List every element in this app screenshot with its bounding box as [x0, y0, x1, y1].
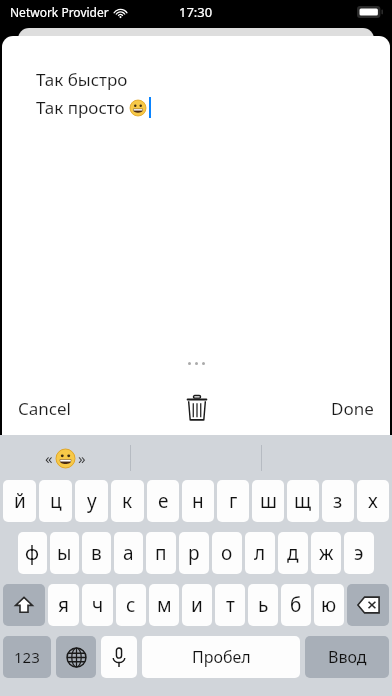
button[interactable]: л: [245, 532, 275, 574]
staticText: с: [126, 592, 136, 618]
staticText: к: [122, 488, 133, 514]
button[interactable]: Done: [261, 391, 390, 425]
button[interactable]: к: [111, 480, 144, 522]
staticText: ч: [92, 592, 104, 618]
button[interactable]: и: [182, 584, 212, 626]
staticText: р: [188, 540, 200, 566]
staticText: Cancel: [18, 397, 71, 420]
button[interactable]: й: [3, 480, 36, 522]
staticText: ь: [258, 592, 269, 618]
button[interactable]: ж: [311, 532, 341, 574]
staticText: «: [45, 448, 53, 468]
staticText: г: [229, 488, 238, 514]
button[interactable]: Delete: [132, 391, 261, 425]
staticText: щ: [294, 488, 312, 514]
button[interactable]: ь: [248, 584, 278, 626]
staticText: в: [91, 540, 102, 566]
staticText: т: [226, 592, 235, 618]
staticText: Так просто: [36, 96, 130, 119]
staticText: и: [191, 592, 203, 618]
staticText: н: [192, 488, 204, 514]
button[interactable]: ц: [39, 480, 72, 522]
button[interactable]: Cancel: [2, 391, 132, 425]
button[interactable]: д: [278, 532, 308, 574]
button[interactable]: б: [281, 584, 311, 626]
staticText: Network Provider: [10, 4, 109, 20]
other: Shift: [14, 595, 34, 615]
staticText: я: [58, 592, 69, 618]
button[interactable]: 123: [3, 636, 51, 678]
button[interactable]: а: [114, 532, 143, 574]
staticText: 123: [14, 647, 40, 667]
staticText: б: [290, 592, 302, 618]
button[interactable]: э: [344, 532, 374, 574]
staticText: л: [254, 540, 266, 566]
button[interactable]: в: [82, 532, 111, 574]
other: Backspace: [357, 596, 380, 614]
button[interactable]: х: [357, 480, 389, 522]
button[interactable]: о: [212, 532, 242, 574]
staticText: Done: [331, 397, 374, 420]
other: Voice input: [111, 647, 127, 668]
staticText: д: [287, 540, 299, 566]
staticText: ф: [25, 540, 40, 566]
staticText: м: [157, 592, 172, 618]
staticText: у: [87, 488, 97, 514]
staticText: »: [78, 448, 86, 468]
button[interactable]: Пробел: [142, 636, 300, 678]
staticText: ю: [321, 592, 337, 618]
button[interactable]: ч: [82, 584, 113, 626]
button[interactable]: Backspace: [347, 584, 389, 626]
staticText: э: [354, 540, 364, 566]
staticText: п: [155, 540, 167, 566]
staticText: ц: [50, 488, 62, 514]
staticText: Так быстро: [36, 68, 128, 91]
button[interactable]: ы: [50, 532, 79, 574]
button[interactable]: п: [146, 532, 176, 574]
button[interactable]: щ: [287, 480, 319, 522]
staticText: х: [368, 488, 378, 514]
button[interactable]: Ввод: [305, 636, 389, 678]
button[interactable]: у: [75, 480, 108, 522]
button[interactable]: ш: [252, 480, 284, 522]
button[interactable]: з: [322, 480, 354, 522]
button[interactable]: я: [48, 584, 79, 626]
staticText: й: [14, 488, 26, 514]
staticText: Пробел: [192, 646, 251, 668]
staticText: ы: [57, 540, 72, 566]
staticText: Ввод: [328, 646, 367, 668]
staticText: е: [158, 488, 169, 514]
other: Change keyboard: [66, 647, 87, 668]
button[interactable]: г: [217, 480, 249, 522]
button[interactable]: Shift: [3, 584, 45, 626]
button[interactable]: е: [147, 480, 179, 522]
button[interactable]: ю: [314, 584, 344, 626]
staticText: о: [221, 540, 233, 566]
staticText: ш: [260, 488, 277, 514]
staticText: а: [123, 540, 134, 566]
button[interactable]: р: [179, 532, 209, 574]
button[interactable]: Change keyboard: [56, 636, 96, 678]
button[interactable]: Voice input: [101, 636, 137, 678]
button[interactable]: т: [215, 584, 245, 626]
button[interactable]: «: [0, 435, 130, 480]
staticText: ж: [319, 540, 334, 566]
button[interactable]: с: [116, 584, 146, 626]
staticText: з: [333, 488, 343, 514]
button[interactable]: м: [149, 584, 179, 626]
staticText: 17:30: [179, 3, 213, 21]
button[interactable]: ф: [18, 532, 47, 574]
button[interactable]: н: [182, 480, 214, 522]
